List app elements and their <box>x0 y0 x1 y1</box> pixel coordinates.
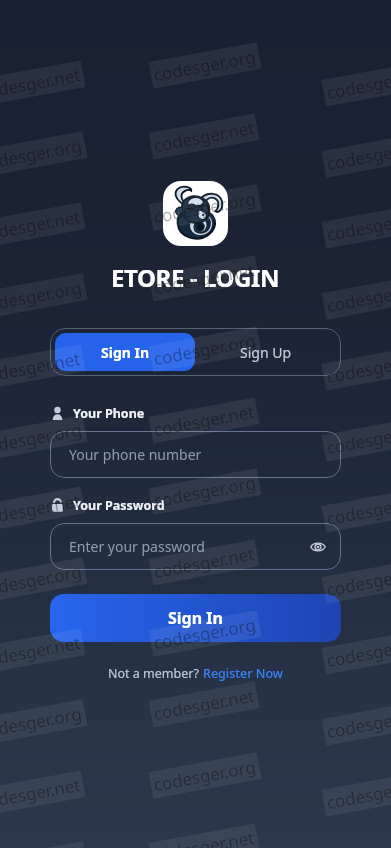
staticText: ETORE - LOGIN <box>111 261 280 294</box>
staticText: codesger.net <box>152 826 256 848</box>
staticText: Sign Up <box>240 343 292 362</box>
staticText: codesger.net <box>0 347 82 388</box>
staticText: codesger.org <box>152 755 258 796</box>
staticText: codesger.net <box>0 489 82 530</box>
staticText: codesger.net <box>0 205 82 246</box>
staticText: Your Password <box>73 497 165 514</box>
staticText: codesger.org <box>152 613 258 654</box>
staticText: codesger.net <box>152 400 256 441</box>
staticText: codesger.org <box>152 45 258 86</box>
staticText: codesger.org <box>152 187 258 228</box>
staticText: codesger.org <box>0 134 84 175</box>
staticText: Enter your password <box>69 537 307 556</box>
staticText: codesger.net <box>0 773 82 814</box>
staticText: codesger.net <box>152 258 256 299</box>
staticText: Register Now <box>203 665 283 682</box>
button[interactable]: Sign Up <box>195 333 336 371</box>
staticText: codesger.org <box>0 560 84 601</box>
staticText: codesger.org <box>325 134 391 175</box>
button[interactable]: Show password <box>307 536 329 558</box>
staticText: codesger.org <box>0 276 84 317</box>
button[interactable]: Sign In <box>50 594 341 642</box>
staticText: codesger.org <box>152 471 258 512</box>
staticText: Your Phone <box>73 405 145 422</box>
staticText: codesger.net <box>152 684 256 725</box>
staticText: codesger.net <box>0 63 82 104</box>
button[interactable]: Your phone number <box>50 431 341 478</box>
staticText: Sign In <box>101 343 150 362</box>
staticText: Not a member? <box>108 665 203 682</box>
staticText: Your phone number <box>69 445 202 464</box>
staticText: codesger.net <box>325 489 391 530</box>
staticText: codesger.org <box>325 276 391 317</box>
staticText: Sign In <box>168 607 223 629</box>
staticText: codesger.net <box>152 542 256 583</box>
staticText: codesger.org <box>0 702 84 743</box>
staticText: codesger.net <box>325 347 391 388</box>
staticText: codesger.net <box>0 631 82 672</box>
button[interactable]: Register Now <box>203 665 283 682</box>
staticText: codesger.net <box>325 631 391 672</box>
button[interactable]: Sign In <box>55 333 195 371</box>
staticText: codesger.org <box>152 329 258 370</box>
staticText: codesger.net <box>325 205 391 246</box>
staticText: codesger.org <box>325 418 391 459</box>
staticText: codesger.org <box>325 702 391 743</box>
staticText: codesger.org <box>0 418 84 459</box>
staticText: codesger.org <box>0 844 84 848</box>
staticText: codesger.net <box>325 63 391 104</box>
staticText: codesger.net <box>152 116 256 157</box>
staticText: codesger.org <box>325 560 391 601</box>
staticText: codesger.net <box>325 773 391 814</box>
